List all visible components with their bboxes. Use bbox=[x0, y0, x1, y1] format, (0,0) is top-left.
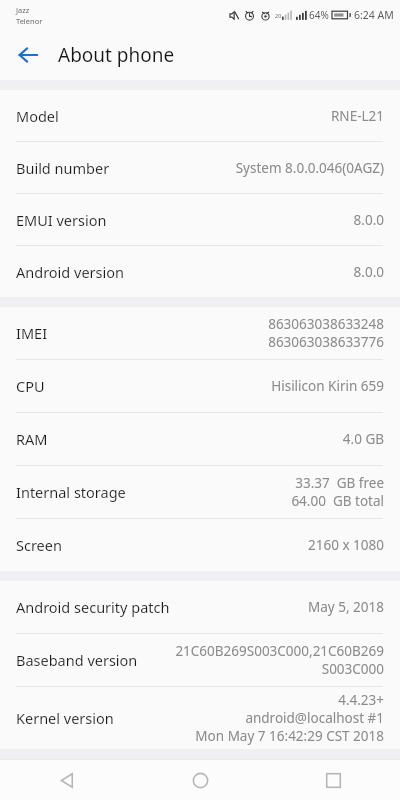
staticText: Internal storage bbox=[16, 482, 126, 502]
staticText: IMEI bbox=[16, 323, 48, 343]
staticText: About phone bbox=[58, 42, 175, 68]
staticText: CPU bbox=[16, 376, 45, 396]
staticText: 33.37 GB free bbox=[295, 474, 384, 492]
staticText: 64% bbox=[309, 8, 329, 22]
staticText: Mon May 7 16:42:29 CST 2018 bbox=[195, 727, 384, 745]
staticText: 2160 x 1080 bbox=[308, 536, 384, 554]
staticText: 8.0.0 bbox=[353, 211, 384, 229]
staticText: RAM bbox=[16, 429, 48, 449]
staticText: Jazz bbox=[16, 5, 30, 15]
staticText: 4.0 GB bbox=[342, 430, 384, 448]
button[interactable]: IMEI bbox=[0, 307, 400, 359]
staticText: Android version bbox=[16, 262, 124, 282]
button[interactable]: Internal storage bbox=[0, 466, 400, 518]
button[interactable]: Model bbox=[0, 90, 400, 141]
staticText: Screen bbox=[16, 535, 62, 555]
staticText: 20 bbox=[275, 12, 282, 19]
staticText: 4.4.23+ bbox=[338, 691, 384, 709]
staticText: Baseband version bbox=[16, 650, 138, 670]
button[interactable]: Back bbox=[8, 35, 48, 75]
staticText: 8.0.0 bbox=[353, 263, 384, 281]
button[interactable]: Screen bbox=[0, 519, 400, 571]
button[interactable]: Build number bbox=[0, 142, 400, 193]
staticText: 64.00 GB total bbox=[291, 492, 384, 510]
staticText: Model bbox=[16, 106, 59, 126]
button[interactable]: Home bbox=[134, 760, 267, 800]
staticText: EMUI version bbox=[16, 210, 107, 230]
button[interactable]: Android security patch bbox=[0, 581, 400, 633]
staticText: Kernel version bbox=[16, 708, 114, 728]
staticText: 863063038633248 bbox=[268, 315, 384, 333]
staticText: 863063038633776 bbox=[268, 333, 384, 351]
button[interactable]: Recents bbox=[267, 760, 400, 800]
staticText: S003C000 bbox=[321, 660, 384, 678]
staticText: RNE-L21 bbox=[330, 107, 384, 125]
button[interactable]: CPU bbox=[0, 360, 400, 412]
button[interactable]: Back bbox=[0, 760, 134, 800]
staticText: Android security patch bbox=[16, 597, 170, 617]
staticText: Telenor bbox=[16, 16, 43, 26]
staticText: Build number bbox=[16, 158, 110, 178]
staticText: android@localhost #1 bbox=[245, 709, 384, 727]
button[interactable]: Kernel version bbox=[0, 687, 400, 749]
staticText: May 5, 2018 bbox=[308, 598, 384, 616]
button[interactable]: RAM bbox=[0, 413, 400, 465]
staticText: Hisilicon Kirin 659 bbox=[271, 377, 384, 395]
staticText: 6:24 AM bbox=[354, 8, 394, 22]
button[interactable]: Baseband version bbox=[0, 634, 400, 686]
button[interactable]: EMUI version bbox=[0, 194, 400, 245]
staticText: 21C60B269S003C000,21C60B269 bbox=[175, 642, 384, 660]
staticText: System 8.0.0.046(0AGZ) bbox=[235, 159, 384, 177]
button[interactable]: Android version bbox=[0, 246, 400, 297]
